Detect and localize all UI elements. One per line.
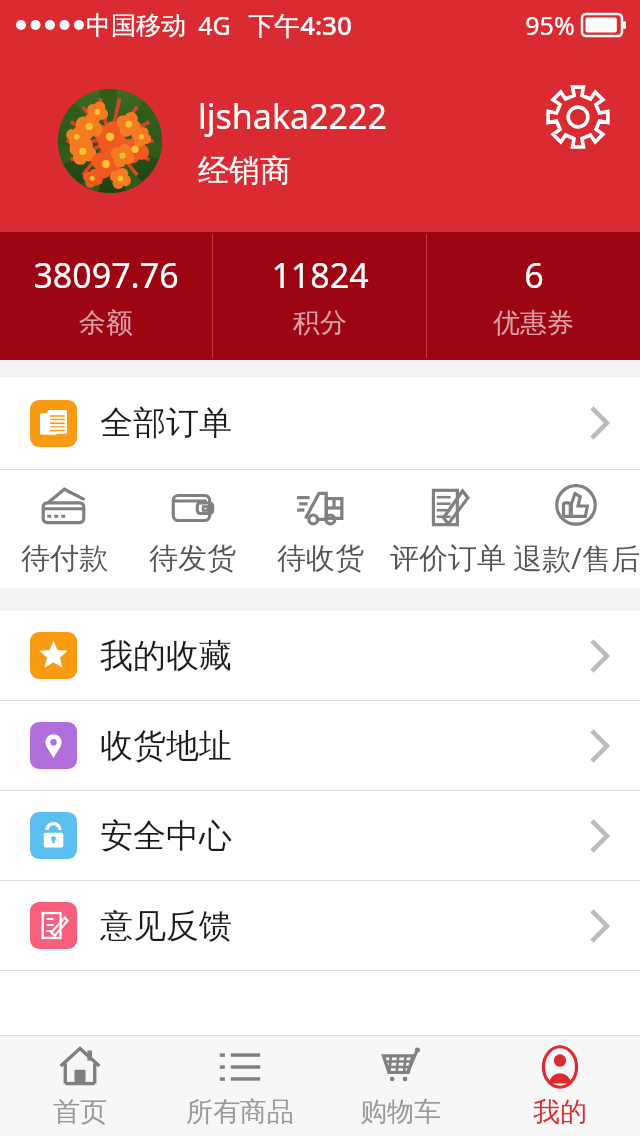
- staticText: 优惠券: [493, 306, 574, 340]
- staticText: 评价订单: [390, 540, 506, 577]
- staticText: 下午4:30: [248, 7, 352, 43]
- staticText: ljshaka2222: [198, 93, 387, 139]
- button[interactable]: 待发货: [128, 470, 256, 588]
- button[interactable]: 11824: [213, 232, 426, 360]
- staticText: 全部订单: [100, 402, 232, 444]
- staticText: 6: [524, 252, 544, 298]
- staticText: 首页: [53, 1095, 107, 1129]
- button[interactable]: 待收货: [256, 470, 384, 588]
- button[interactable]: 安全中心: [0, 791, 640, 880]
- button[interactable]: 首页: [0, 1036, 160, 1136]
- staticText: 收货地址: [100, 725, 232, 767]
- button[interactable]: 评价订单: [384, 470, 512, 588]
- staticText: 我的: [533, 1095, 587, 1129]
- staticText: 11824: [271, 252, 369, 298]
- staticText: 我的收藏: [100, 635, 232, 677]
- button[interactable]: 购物车: [320, 1036, 480, 1136]
- button[interactable]: [58, 89, 162, 193]
- staticText: 待发货: [149, 540, 236, 577]
- button[interactable]: Settings: [545, 84, 611, 150]
- staticText: 退款/售后: [513, 538, 640, 578]
- button[interactable]: 待付款: [0, 470, 128, 588]
- button[interactable]: 我的收藏: [0, 611, 640, 700]
- button[interactable]: 我的: [480, 1036, 640, 1136]
- staticText: 经销商: [198, 151, 291, 190]
- staticText: 38097.76: [33, 252, 179, 298]
- button[interactable]: 退款/售后: [512, 470, 640, 588]
- button[interactable]: 全部订单: [0, 377, 640, 469]
- staticText: 待收货: [277, 540, 364, 577]
- button[interactable]: 所有商品: [160, 1036, 320, 1136]
- button[interactable]: 意见反馈: [0, 881, 640, 970]
- staticText: 安全中心: [100, 815, 232, 857]
- staticText: 购物车: [360, 1095, 441, 1129]
- staticText: 意见反馈: [100, 905, 232, 947]
- staticText: 95%: [525, 8, 575, 42]
- staticText: 4G: [198, 8, 231, 42]
- staticText: 所有商品: [186, 1095, 294, 1129]
- staticText: 中国移动: [86, 10, 186, 41]
- button[interactable]: 收货地址: [0, 701, 640, 790]
- staticText: 待付款: [21, 540, 108, 577]
- button[interactable]: 6: [427, 232, 640, 360]
- staticText: 积分: [293, 306, 347, 340]
- button[interactable]: 38097.76: [0, 232, 212, 360]
- staticText: 余额: [79, 306, 133, 340]
